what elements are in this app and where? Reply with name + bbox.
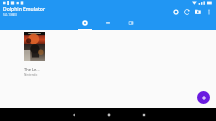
button[interactable]: Settings: [170, 6, 181, 17]
button[interactable]: Back: [67, 108, 80, 121]
button[interactable]: Add games: [197, 91, 210, 104]
button[interactable]: Platform Wii: [101, 17, 115, 30]
button[interactable]: Platform WiiWare: [124, 17, 138, 30]
staticText: Nintendo: [24, 73, 38, 77]
button[interactable]: Home: [102, 108, 115, 121]
button[interactable]: Platform GameCube: [78, 17, 92, 30]
staticText: The Le...: [24, 67, 40, 72]
button[interactable]: Recent apps: [137, 108, 150, 121]
button[interactable]: Refresh: [181, 6, 192, 17]
button[interactable]: More options: [203, 6, 214, 17]
staticText: 5.0-13603: [3, 13, 17, 17]
button[interactable]: The Le...: [24, 32, 58, 77]
button[interactable]: Open file: [192, 6, 203, 17]
staticText: Dolphin Emulator: [3, 6, 46, 13]
